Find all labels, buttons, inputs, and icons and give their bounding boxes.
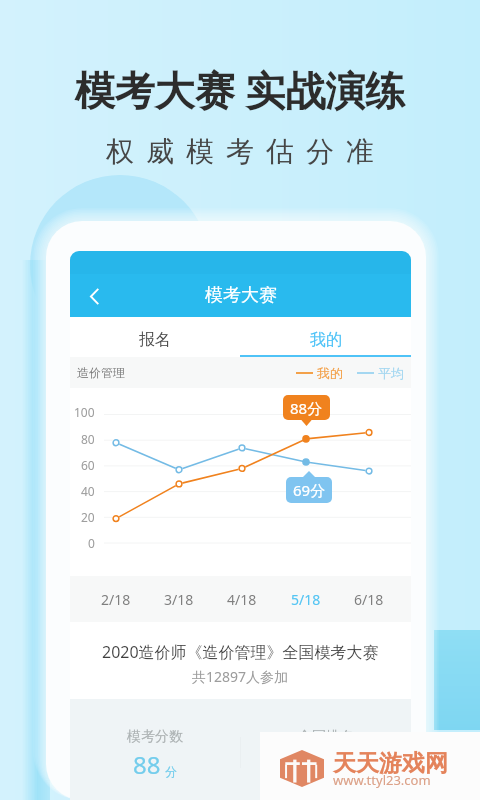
staticText: 全国排名 <box>298 728 354 746</box>
staticText: 2/18 <box>101 590 131 609</box>
staticText: 分 <box>343 764 355 779</box>
staticText: 模考大赛 <box>205 284 277 307</box>
staticText: 报名 <box>139 330 171 350</box>
staticText: 6/18 <box>354 590 384 609</box>
staticText: 5/18 <box>291 590 321 609</box>
staticText: 天天游戏网 <box>333 749 448 778</box>
staticText: 88分 <box>290 398 323 418</box>
staticText: www.ttyl23.com <box>333 771 431 789</box>
staticText: 2020造价师《造价管理》全国模考大赛 <box>102 641 379 663</box>
staticText: 4/18 <box>227 590 257 609</box>
button[interactable]: Back <box>75 277 113 315</box>
staticText: 80 <box>81 431 95 447</box>
button[interactable]: 全国排名 <box>240 699 411 800</box>
staticText: 我的 <box>310 330 342 350</box>
staticText: 100 <box>74 404 95 420</box>
staticText: 69分 <box>293 480 326 500</box>
staticText: 40 <box>81 483 95 499</box>
staticText: 模考分数 <box>127 728 183 746</box>
staticText: 0 <box>88 535 95 551</box>
button[interactable]: 模考分数 <box>70 699 240 800</box>
button[interactable]: 我的 <box>240 317 411 357</box>
staticText: 分 <box>165 764 177 779</box>
staticText: 我的 <box>317 365 343 381</box>
staticText: 权威模考估分准 <box>6 134 480 169</box>
staticText: 共12897人参加 <box>192 667 289 686</box>
staticText: 模考大赛 实战演练 <box>0 62 480 117</box>
staticText: 126 <box>297 748 339 781</box>
staticText: 3/18 <box>164 590 194 609</box>
staticText: 20 <box>81 509 95 525</box>
staticText: 平均 <box>378 365 404 381</box>
staticText: 造价管理 <box>77 365 125 380</box>
staticText: 88 <box>133 748 161 781</box>
staticText: 60 <box>81 457 95 473</box>
button[interactable]: 报名 <box>70 317 240 357</box>
